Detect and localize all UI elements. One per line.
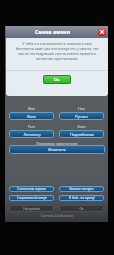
button[interactable]: Статистика игрока (9, 186, 54, 192)
staticText: Смена имени (35, 29, 71, 36)
staticText: Настройки (23, 207, 40, 211)
button[interactable]: Боевые заслуги (59, 186, 104, 192)
staticText: Имя (9, 106, 54, 111)
staticText: Легионер (23, 132, 41, 137)
staticText: Пожелание заместителю (9, 141, 105, 146)
staticText: У тебя есть возможность поменять имя бес… (15, 41, 99, 61)
button[interactable]: Изменить (9, 145, 105, 154)
staticText: Клан (59, 124, 104, 129)
staticText: Статистика игрока (17, 187, 46, 191)
button[interactable]: Поднебесная (59, 130, 104, 138)
staticText: Ок (79, 207, 84, 211)
staticText: Социальный статус (17, 196, 47, 200)
staticText: Ранг (9, 124, 54, 129)
button[interactable]: Руслан (59, 112, 104, 120)
button[interactable]: Закрыть (98, 28, 106, 36)
staticText: Ок (54, 77, 60, 82)
staticText: В бой - на арену! (69, 196, 95, 200)
staticText: Боевые заслуги (69, 187, 94, 191)
staticText: Вася (27, 114, 36, 119)
button[interactable]: Легионер (9, 130, 54, 138)
button[interactable]: Ок (59, 205, 104, 212)
staticText: Ник (59, 106, 104, 111)
button[interactable]: Настройки (9, 205, 54, 212)
button[interactable]: Социальный статус (9, 195, 54, 201)
staticText: Руслан (75, 114, 88, 119)
button[interactable]: Ок (43, 75, 71, 84)
staticText: Поднебесная (70, 132, 94, 137)
button[interactable]: Вася (9, 112, 54, 120)
staticText: Система Сообщения (9, 214, 105, 218)
button[interactable]: В бой - на арену! (59, 195, 104, 201)
staticText: Изменить (48, 147, 66, 152)
